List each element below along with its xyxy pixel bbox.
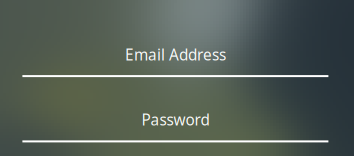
staticText: Password — [141, 109, 209, 130]
staticText: Email Address — [125, 44, 226, 65]
